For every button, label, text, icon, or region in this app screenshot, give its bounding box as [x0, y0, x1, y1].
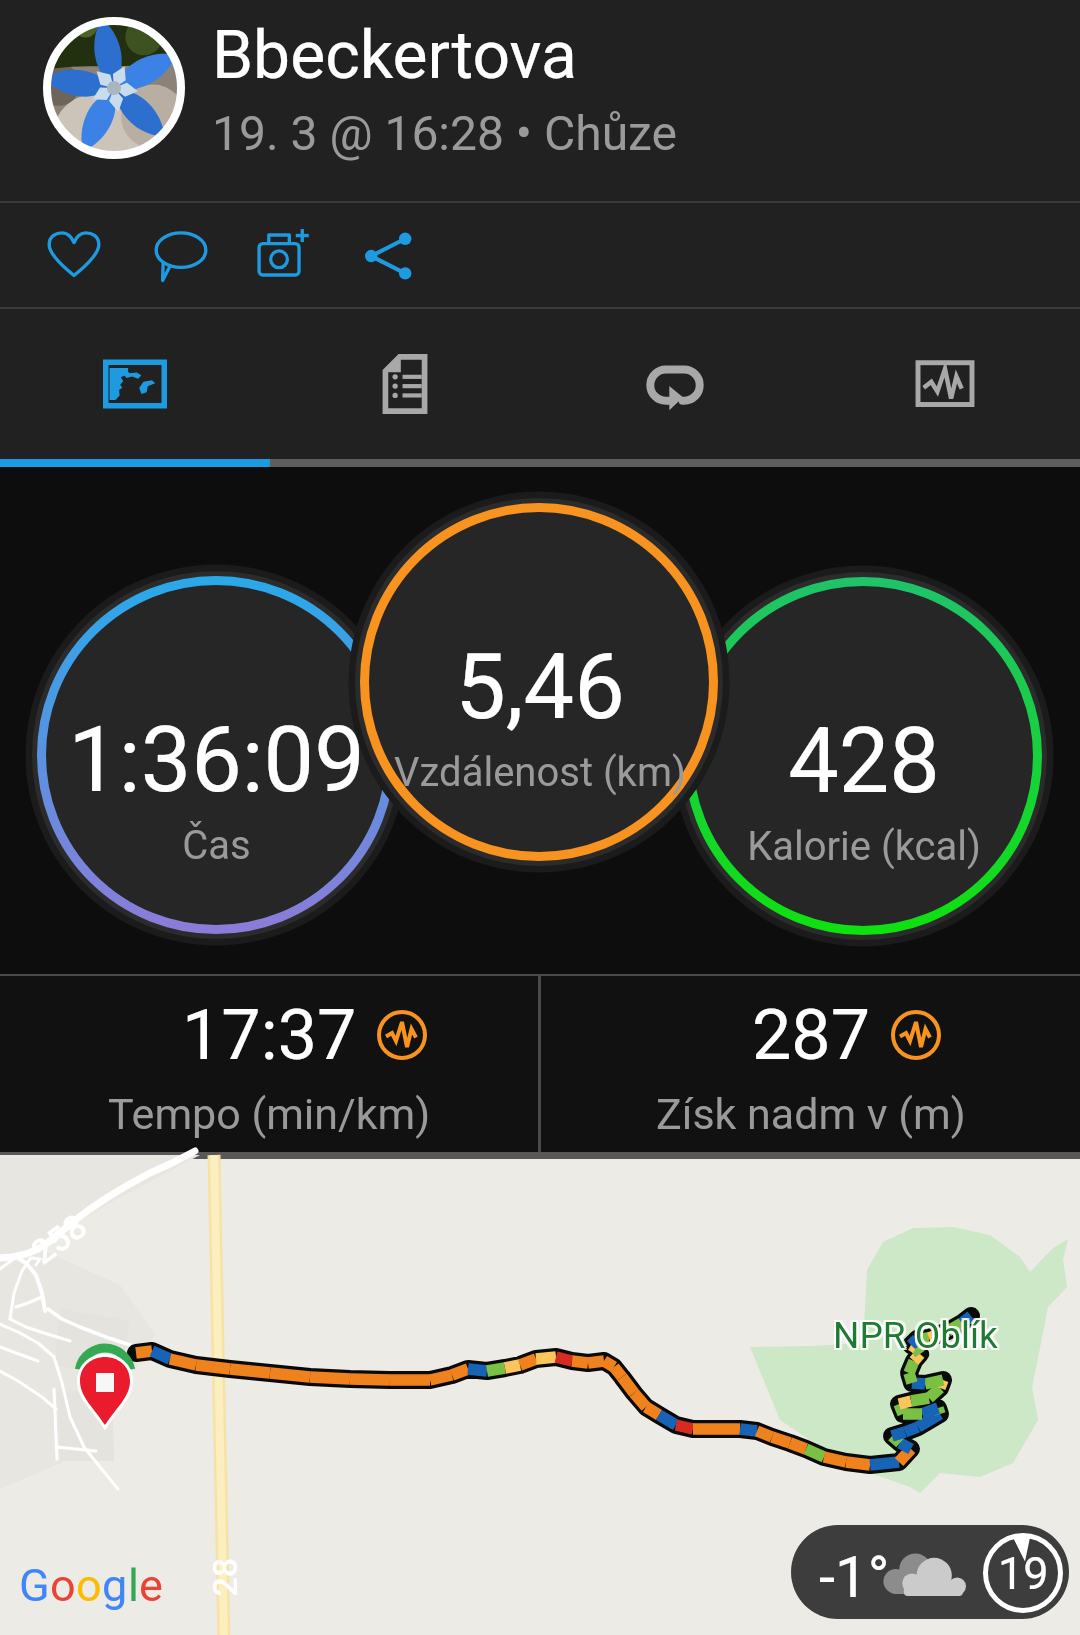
- staticText: NPR Oblík: [835, 1312, 1000, 1355]
- staticText: 17:37: [182, 994, 357, 1076]
- staticText: NPR Oblík: [831, 1312, 996, 1355]
- button[interactable]: Share: [341, 207, 437, 303]
- staticText: NPR Oblík: [833, 1312, 998, 1355]
- staticText: -1°: [819, 1543, 890, 1611]
- button[interactable]: Route map: [0, 1159, 1080, 1635]
- staticText: Kalorie (kcal): [747, 823, 981, 870]
- staticText: o: [76, 1559, 102, 1612]
- staticText: Bbeckertova: [212, 17, 577, 94]
- button[interactable]: Graph: [810, 309, 1080, 459]
- staticText: 28: [204, 1557, 244, 1596]
- button[interactable]: Bbeckertova: [0, 0, 1080, 201]
- staticText: Získ nadm v (m): [656, 1089, 966, 1139]
- staticText: Vzdálenost (km): [394, 749, 686, 796]
- button[interactable]: Comment: [133, 207, 229, 303]
- staticText: 258: [24, 1206, 94, 1272]
- staticText: NPR Oblík: [835, 1314, 1000, 1357]
- staticText: Tempo (min/km): [108, 1089, 431, 1139]
- button[interactable]: Details: [270, 309, 540, 459]
- staticText: e: [139, 1559, 163, 1612]
- staticText: NPR Oblík: [833, 1314, 998, 1357]
- staticText: 428: [788, 709, 940, 814]
- staticText: 5,46: [455, 635, 625, 740]
- button[interactable]: Map: [0, 309, 270, 459]
- staticText: g: [102, 1559, 128, 1612]
- staticText: NPR Oblík: [831, 1314, 996, 1357]
- staticText: l: [128, 1559, 139, 1612]
- staticText: o: [50, 1559, 76, 1612]
- staticText: NPR Oblík: [833, 1314, 998, 1357]
- staticText: 19: [998, 1547, 1049, 1600]
- button[interactable]: 17:37: [0, 976, 538, 1152]
- button[interactable]: Add photo: [237, 207, 333, 303]
- button[interactable]: Laps: [540, 309, 810, 459]
- button[interactable]: Like: [26, 207, 122, 303]
- staticText: NPR Oblík: [831, 1316, 996, 1359]
- staticText: 19. 3 @ 16:28 • Chůze: [212, 105, 677, 161]
- button[interactable]: 1:36:09: [42, 581, 391, 930]
- staticText: NPR Oblík: [835, 1316, 1000, 1359]
- button[interactable]: 5,46: [365, 508, 714, 857]
- staticText: G: [19, 1559, 50, 1612]
- button[interactable]: 287: [541, 976, 1080, 1152]
- staticText: 287: [752, 994, 871, 1076]
- staticText: Čas: [182, 822, 251, 869]
- staticText: 1:36:09: [68, 708, 365, 813]
- button[interactable]: Weather: [791, 1525, 1069, 1619]
- staticText: NPR Oblík: [833, 1316, 998, 1359]
- button[interactable]: 428: [689, 582, 1038, 931]
